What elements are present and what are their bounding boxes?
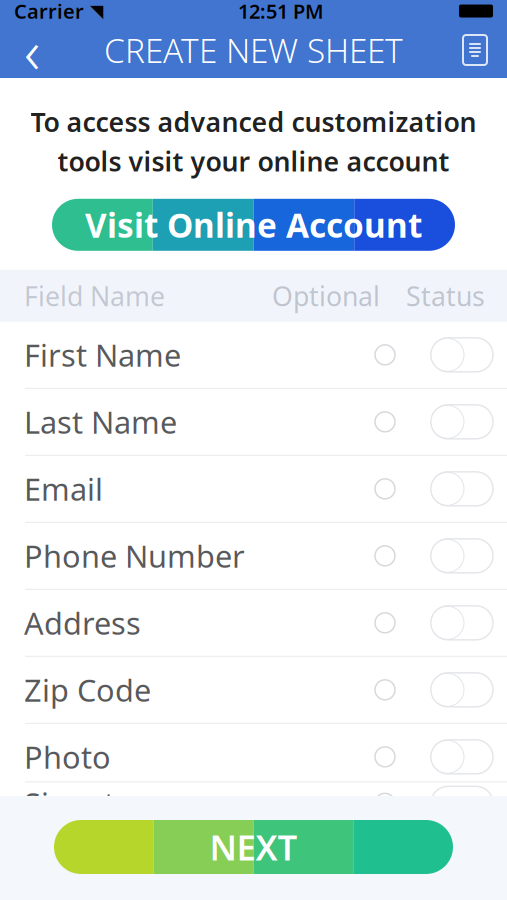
staticText: tools visit your online account [57,143,449,179]
button[interactable]: Mark Photo optional [361,733,409,781]
staticText: ‹ [24,9,40,91]
button[interactable]: Mark Address optional [361,599,409,647]
staticText: CREATE NEW SHEET [104,28,403,72]
staticText: ◥ [90,1,103,21]
button[interactable]: Toggle Photo [431,733,493,781]
staticText: Zip Code [24,669,151,710]
staticText: Signature [24,783,163,824]
button[interactable]: Toggle Last Name [431,398,493,446]
button[interactable]: Mark First Name optional [361,331,409,379]
staticText: 12:51 PM [238,0,324,24]
button[interactable]: Mark Phone Number optional [361,532,409,580]
button[interactable]: Documents [447,22,503,78]
staticText: NEXT [209,824,297,870]
button[interactable]: Visit Online Account [52,199,455,251]
button[interactable]: Toggle Email [431,465,493,513]
staticText: Photo [24,736,111,777]
button[interactable]: Toggle Zip Code [431,666,493,714]
staticText: Visit Online Account [85,203,422,247]
button[interactable]: NEXT [54,820,453,874]
button[interactable]: Mark Zip Code optional [361,666,409,714]
staticText: Optional [272,278,380,313]
staticText: To access advanced customization [30,104,476,139]
staticText: First Name [24,334,181,375]
button[interactable]: Toggle First Name [431,331,493,379]
button[interactable]: Mark Email optional [361,465,409,513]
staticText: Address [24,602,141,643]
button[interactable]: Back [4,22,60,78]
staticText: Carrier [14,0,84,24]
staticText: Status [406,278,485,313]
staticText: Field Name [24,278,165,313]
button[interactable]: Toggle Phone Number [431,532,493,580]
staticText: Email [24,468,103,509]
button[interactable]: Toggle Address [431,599,493,647]
staticText: Phone Number [24,535,245,576]
button[interactable]: Mark Last Name optional [361,398,409,446]
staticText: Last Name [24,401,177,442]
